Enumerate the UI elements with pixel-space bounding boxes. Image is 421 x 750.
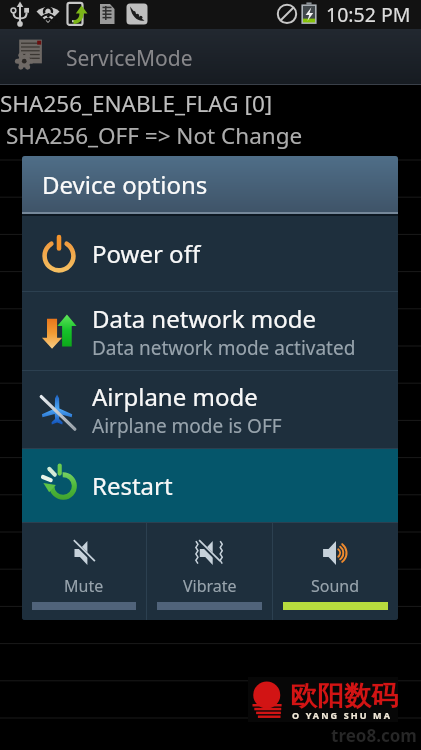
staticText: Device options: [42, 168, 208, 201]
staticText: Data network mode activated: [92, 335, 356, 361]
staticText: 10:52 PM: [326, 1, 411, 28]
staticText: Restart: [92, 469, 173, 502]
button[interactable]: Restart: [22, 449, 398, 522]
staticText: Mute: [64, 575, 104, 597]
staticText: Data network mode: [92, 302, 316, 335]
staticText: Power off: [92, 237, 201, 270]
staticText: Sound: [311, 575, 360, 597]
button[interactable]: Power off: [22, 216, 398, 291]
staticText: Vibrate: [183, 575, 237, 597]
staticText: SHA256_ENABLE_FLAG [0]: [0, 88, 273, 119]
staticText: O YANG SHU MA: [292, 709, 392, 721]
staticText: 欧阳数码: [290, 679, 398, 713]
button[interactable]: Airplane mode: [22, 371, 398, 448]
staticText: SHA256_OFF => Not Change: [6, 120, 303, 151]
button[interactable]: Vibrate: [147, 523, 272, 620]
other: App icon: [12, 36, 48, 72]
staticText: Airplane mode: [92, 380, 258, 413]
staticText: ServiceMode: [66, 44, 193, 73]
button[interactable]: Sound: [273, 523, 398, 620]
button[interactable]: Mute: [22, 523, 146, 620]
staticText: Airplane mode is OFF: [92, 413, 282, 439]
button[interactable]: Data network mode: [22, 292, 398, 370]
staticText: treo8.com: [331, 724, 417, 747]
